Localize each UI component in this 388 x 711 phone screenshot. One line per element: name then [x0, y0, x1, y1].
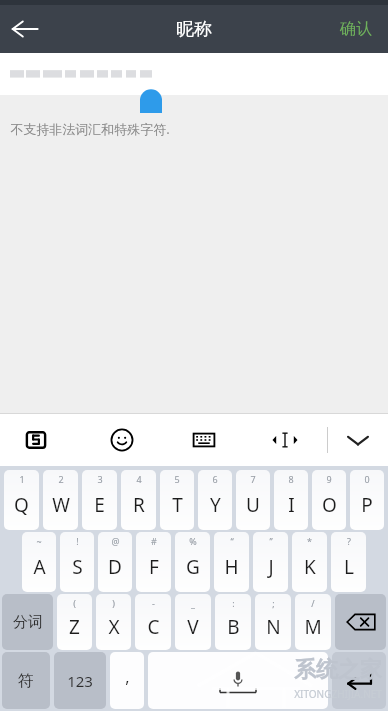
staticText: Y	[210, 492, 221, 518]
staticText: :	[232, 597, 235, 609]
button[interactable]: 4	[121, 470, 156, 530]
staticText: L	[344, 554, 354, 580]
button[interactable]: Hide keyboard	[336, 418, 380, 462]
staticText: 6	[212, 473, 218, 485]
staticText: I	[288, 492, 295, 518]
button[interactable]: 3	[82, 470, 117, 530]
button[interactable]: 符	[2, 652, 50, 709]
button[interactable]: Emoji	[100, 418, 144, 462]
button[interactable]: 确认	[332, 9, 380, 49]
button[interactable]: )	[96, 594, 131, 650]
staticText: H	[224, 554, 239, 580]
button[interactable]: “	[214, 532, 249, 592]
staticText: 9	[326, 473, 332, 485]
staticText: 昵称	[176, 18, 212, 41]
staticText: *	[307, 535, 312, 547]
button[interactable]: 5	[160, 470, 194, 530]
staticText: Z	[69, 614, 80, 640]
button[interactable]: ,	[110, 652, 144, 709]
button[interactable]: Enter	[332, 652, 386, 709]
staticText: 0	[364, 473, 370, 485]
button[interactable]: *	[292, 532, 327, 592]
staticText: A	[33, 554, 46, 580]
button[interactable]: ;	[255, 594, 291, 650]
staticText: 4	[136, 473, 142, 485]
staticText: 1	[19, 473, 25, 485]
button[interactable]: :	[215, 594, 251, 650]
staticText: C	[147, 614, 160, 640]
staticText: -	[152, 597, 155, 609]
staticText: 2	[58, 473, 64, 485]
button[interactable]: -	[135, 594, 171, 650]
staticText: E	[94, 492, 105, 518]
staticText: ,	[125, 666, 130, 688]
button[interactable]: 0	[350, 470, 384, 530]
staticText: %	[189, 535, 197, 547]
button[interactable]: !	[60, 532, 94, 592]
button[interactable]: /	[295, 594, 331, 650]
button[interactable]: 2	[43, 470, 78, 530]
staticText: V	[187, 614, 199, 640]
button[interactable]: _	[175, 594, 211, 650]
button[interactable]: 6	[198, 470, 232, 530]
button[interactable]: (	[57, 594, 92, 650]
staticText: @	[111, 535, 120, 547]
button[interactable]: %	[175, 532, 210, 592]
button[interactable]: ”	[253, 532, 288, 592]
button[interactable]: Backspace	[335, 594, 386, 650]
staticText: !	[76, 535, 79, 547]
staticText: ;	[272, 597, 275, 609]
staticText: 5	[174, 473, 180, 485]
staticText: /	[311, 597, 315, 609]
button[interactable]: 分词	[2, 594, 53, 650]
staticText: )	[112, 597, 115, 609]
staticText: X	[108, 614, 120, 640]
staticText: O	[322, 492, 337, 518]
staticText: T	[172, 492, 183, 518]
staticText: (	[73, 597, 76, 609]
staticText: D	[108, 554, 122, 580]
button[interactable]: Move cursor	[263, 418, 307, 462]
button[interactable]: Space / Voice input	[148, 652, 328, 709]
staticText: 不支持非法词汇和特殊字符.	[10, 120, 170, 138]
staticText: ”	[269, 535, 273, 547]
staticText: M	[304, 614, 322, 640]
button[interactable]: 9	[312, 470, 346, 530]
staticText: 确认	[340, 19, 372, 39]
staticText: 3	[97, 473, 103, 485]
button[interactable]: Keyboard layout	[182, 418, 226, 462]
button[interactable]: ?	[331, 532, 366, 592]
staticText: “	[230, 535, 234, 547]
staticText: ?	[347, 535, 351, 547]
staticText: N	[266, 614, 281, 640]
staticText: S	[72, 554, 83, 580]
staticText: R	[133, 492, 145, 518]
staticText: #	[151, 535, 157, 547]
staticText: B	[227, 614, 240, 640]
button[interactable]: ~	[22, 532, 56, 592]
button[interactable]: Input method	[14, 418, 58, 462]
button[interactable]: #	[136, 532, 171, 592]
staticText: ~	[36, 535, 42, 547]
staticText: XITONGZHIJIA.NET	[294, 687, 382, 701]
button[interactable]: Back	[0, 5, 50, 53]
staticText: P	[361, 492, 373, 518]
button[interactable]: 7	[236, 470, 270, 530]
button[interactable]: 1	[4, 470, 39, 530]
staticText: 8	[288, 473, 294, 485]
button[interactable]: 8	[274, 470, 308, 530]
staticText: K	[304, 554, 316, 580]
staticText: 系统之家	[294, 656, 382, 684]
button[interactable]: @	[98, 532, 132, 592]
staticText: F	[149, 554, 159, 580]
staticText: G	[186, 554, 200, 580]
staticText: 7	[250, 473, 256, 485]
staticText: 分词	[13, 613, 43, 632]
staticText: _	[191, 597, 195, 609]
button[interactable]: 123	[54, 652, 106, 709]
staticText: 符	[18, 671, 34, 691]
staticText: 123	[67, 671, 93, 691]
staticText: W	[52, 492, 70, 518]
staticText: J	[268, 554, 274, 580]
staticText: Q	[14, 492, 29, 518]
